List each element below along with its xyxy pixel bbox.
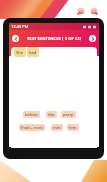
staticText: TEST SENTENCES ( 1 OF 12) — [19, 36, 89, 41]
button[interactable]: Back — [12, 35, 19, 42]
button[interactable]: the — [46, 111, 57, 118]
button[interactable]: him — [67, 124, 79, 131]
button[interactable]: met — [51, 124, 63, 131]
staticText: him — [69, 125, 77, 130]
staticText: met — [53, 125, 61, 130]
staticText: (had + met) — [21, 125, 43, 130]
button[interactable]: (had + met) — [19, 124, 45, 131]
button[interactable]: She — [14, 47, 26, 57]
staticText: party — [63, 112, 74, 117]
button[interactable]: party — [61, 111, 76, 118]
staticText: before — [25, 112, 38, 117]
staticText: the — [48, 112, 55, 117]
button[interactable]: before — [23, 111, 40, 118]
staticText: 12:45 PM — [11, 24, 29, 29]
button[interactable]: Next — [89, 35, 96, 42]
button[interactable]: had — [27, 47, 39, 57]
staticText: had — [29, 50, 37, 55]
staticText: She — [16, 50, 24, 55]
